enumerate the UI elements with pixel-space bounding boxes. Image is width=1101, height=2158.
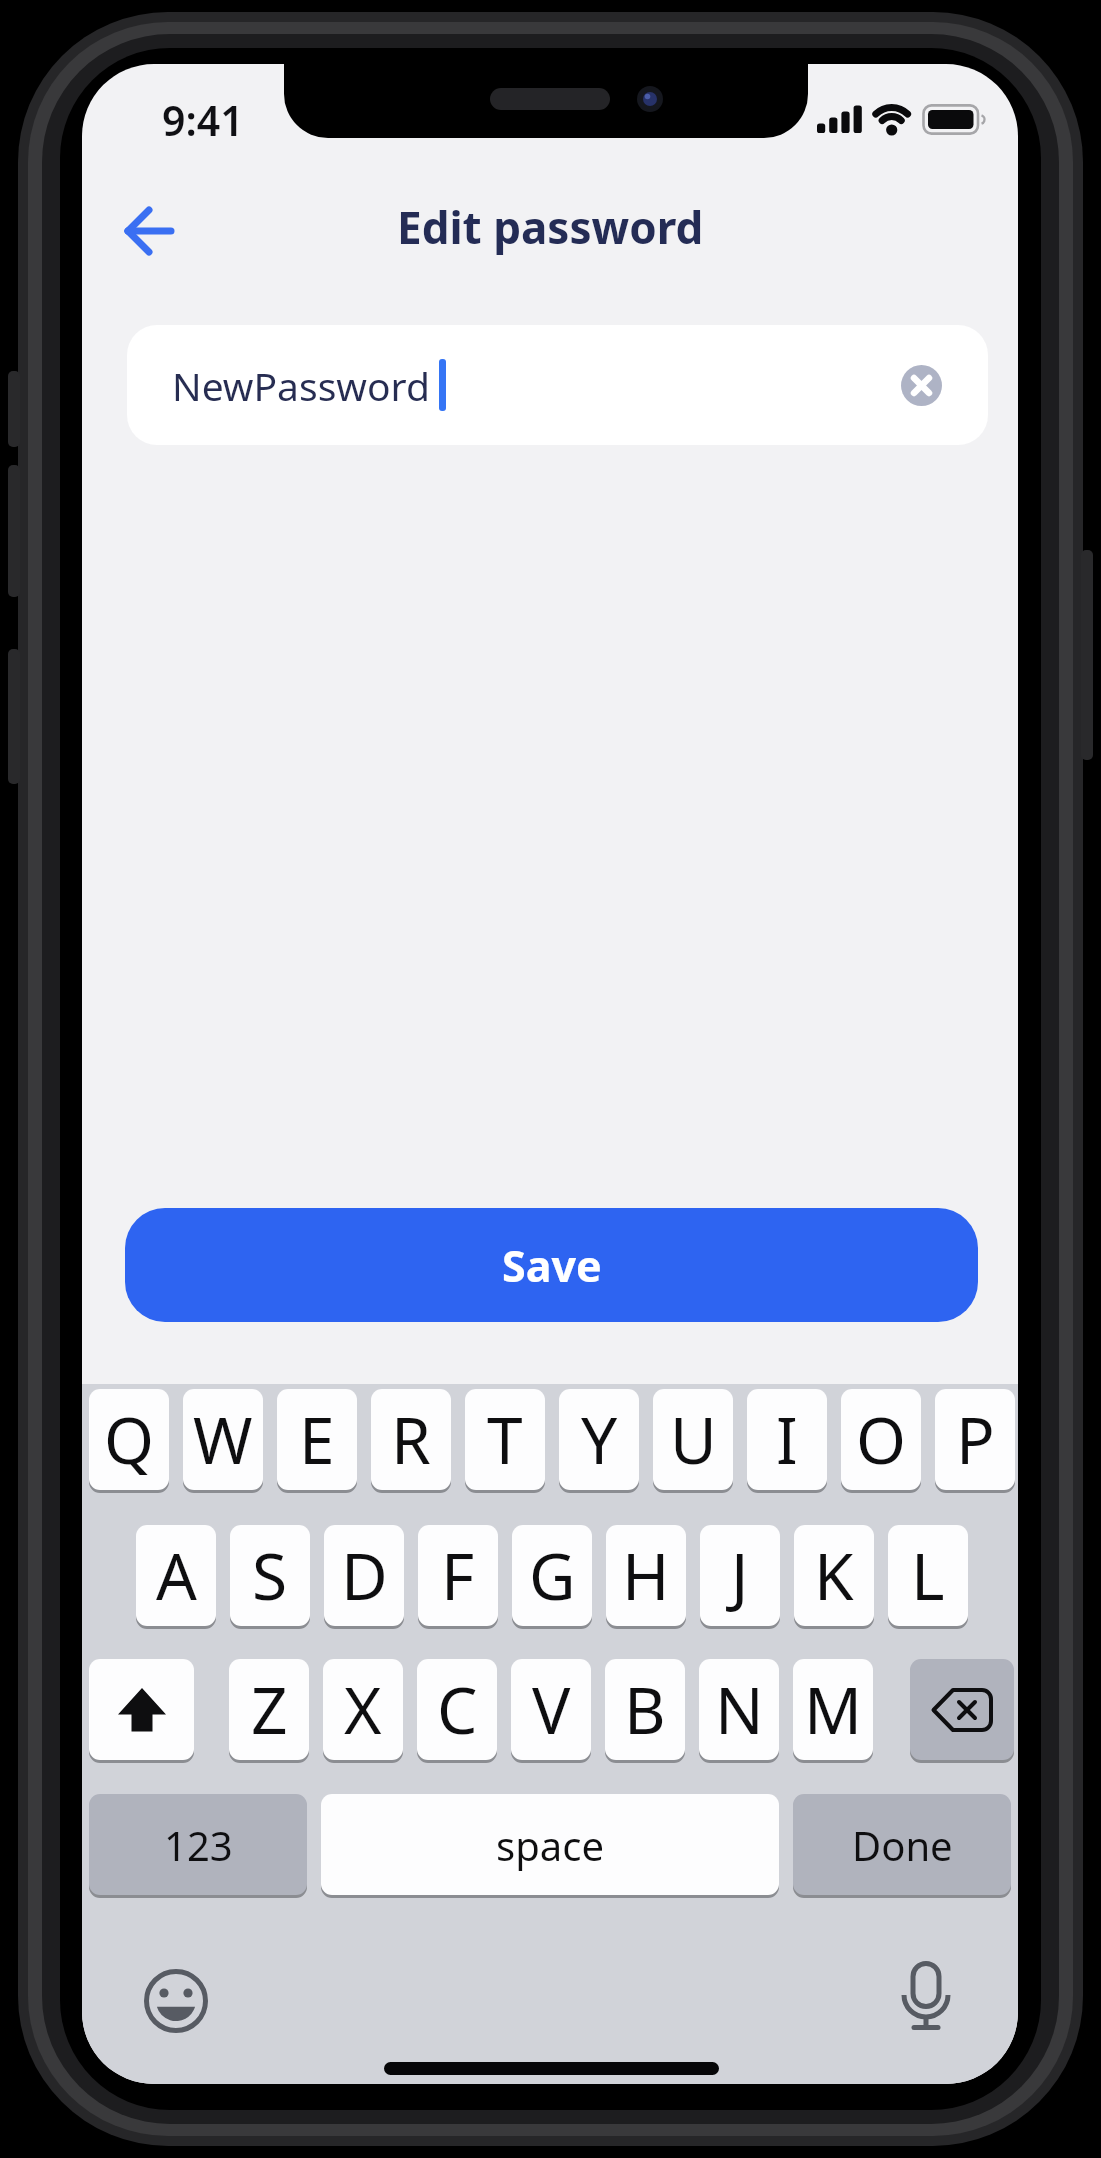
button[interactable]: L (888, 1525, 968, 1629)
button[interactable]: T (465, 1389, 545, 1493)
button[interactable]: space (321, 1794, 779, 1898)
button[interactable]: A (136, 1525, 216, 1629)
staticText: F (441, 1532, 475, 1619)
staticText: space (496, 1818, 604, 1872)
staticText: E (299, 1396, 335, 1483)
button[interactable] (144, 1969, 208, 2033)
button[interactable]: R (371, 1389, 451, 1493)
button[interactable]: G (512, 1525, 592, 1629)
button[interactable]: H (606, 1525, 686, 1629)
button[interactable]: Done (793, 1794, 1011, 1898)
staticText: T (487, 1396, 523, 1483)
button[interactable]: Q (89, 1389, 169, 1493)
button[interactable]: F (418, 1525, 498, 1629)
staticText: C (437, 1666, 478, 1753)
button[interactable]: X (323, 1659, 403, 1763)
button[interactable] (107, 189, 191, 273)
staticText: Y (581, 1396, 618, 1483)
button[interactable] (910, 1659, 1014, 1763)
button[interactable]: O (841, 1389, 921, 1493)
button[interactable] (895, 1961, 957, 2037)
button[interactable]: M (793, 1659, 873, 1763)
staticText: P (956, 1396, 995, 1483)
staticText: U (670, 1396, 717, 1483)
button[interactable] (89, 1659, 194, 1763)
staticText: O (856, 1396, 906, 1483)
staticText: Z (251, 1666, 288, 1753)
button[interactable]: N (699, 1659, 779, 1763)
staticText: J (731, 1532, 749, 1619)
staticText: K (814, 1532, 854, 1619)
button[interactable]: J (700, 1525, 780, 1629)
button[interactable]: S (230, 1525, 310, 1629)
staticText: S (252, 1532, 288, 1619)
button[interactable] (901, 365, 942, 406)
button[interactable]: I (747, 1389, 827, 1493)
button[interactable]: W (183, 1389, 263, 1493)
staticText: R (391, 1396, 431, 1483)
staticText: X (344, 1666, 382, 1753)
button[interactable]: U (653, 1389, 733, 1493)
staticText: N (715, 1666, 764, 1753)
button[interactable]: Y (559, 1389, 639, 1493)
button[interactable]: D (324, 1525, 404, 1629)
staticText: D (341, 1532, 388, 1619)
staticText: I (776, 1396, 798, 1483)
button[interactable]: 123 (89, 1794, 307, 1898)
button[interactable]: Z (229, 1659, 309, 1763)
staticText: B (624, 1666, 666, 1753)
button[interactable]: V (511, 1659, 591, 1763)
staticText: M (804, 1666, 863, 1753)
button[interactable]: E (277, 1389, 357, 1493)
button[interactable]: K (794, 1525, 874, 1629)
staticText: V (532, 1666, 571, 1753)
staticText: NewPassword (172, 359, 430, 412)
staticText: G (529, 1532, 576, 1619)
staticText: A (156, 1532, 197, 1619)
button[interactable]: C (417, 1659, 497, 1763)
staticText: 9:41 (162, 92, 244, 148)
staticText: Save (502, 1236, 602, 1295)
staticText: H (622, 1532, 670, 1619)
staticText: L (911, 1532, 945, 1619)
staticText: Edit password (397, 197, 704, 257)
staticText: Done (852, 1818, 953, 1872)
button[interactable]: NewPassword (127, 325, 988, 445)
staticText: Q (104, 1396, 154, 1483)
button[interactable]: P (935, 1389, 1015, 1493)
staticText: 123 (164, 1818, 233, 1872)
staticText: W (193, 1396, 253, 1483)
button[interactable]: B (605, 1659, 685, 1763)
button[interactable]: Save (125, 1208, 978, 1322)
